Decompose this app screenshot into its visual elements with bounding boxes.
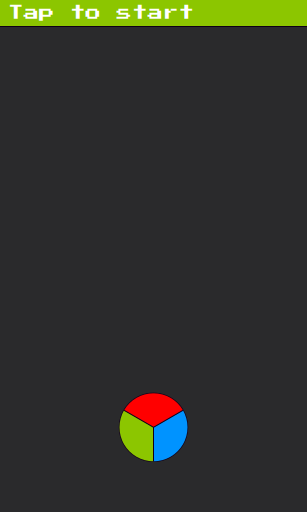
staticText: Tap to start — [8, 5, 194, 21]
button[interactable]: Tap to start — [0, 0, 307, 27]
button[interactable]: Spinner — [119, 393, 188, 462]
